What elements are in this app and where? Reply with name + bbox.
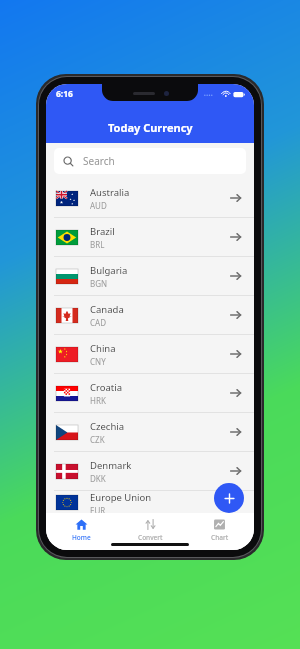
button[interactable]: Chart [185,516,254,550]
button[interactable]: Add currency [214,483,244,513]
staticText: Today Currency [108,120,193,135]
staticText: Brazil [90,225,115,238]
button[interactable]: Search [54,148,246,174]
staticText: EUR [90,505,106,513]
staticText: China [90,342,116,355]
staticText: CZK [90,434,105,445]
button[interactable]: Europe Union [46,491,254,513]
staticText: BRL [90,239,105,250]
staticText: HRK [90,395,106,406]
button[interactable]: Brazil [46,218,254,256]
staticText: Croatia [90,381,123,394]
staticText: Denmark [90,459,132,472]
staticText: CAD [90,317,107,328]
button[interactable]: Canada [46,296,254,334]
staticText: Chart [211,533,229,542]
button[interactable]: Convert [116,516,185,550]
button[interactable]: Home [46,516,116,550]
button[interactable]: Czechia [46,413,254,451]
button[interactable]: Australia [46,179,254,217]
button[interactable]: China [46,335,254,373]
staticText: Home [72,533,91,542]
button[interactable]: Croatia [46,374,254,412]
staticText: Australia [90,186,130,199]
staticText: Search [83,154,115,168]
staticText: Bulgaria [90,264,128,277]
staticText: Czechia [90,420,125,433]
staticText: Europe Union [90,491,152,504]
button[interactable]: Bulgaria [46,257,254,295]
staticText: AUD [90,200,107,211]
staticText: Convert [138,533,163,542]
staticText: BGN [90,278,108,289]
staticText: 6:16 [56,88,73,100]
staticText: Canada [90,303,124,316]
button[interactable]: Denmark [46,452,254,490]
staticText: CNY [90,356,106,367]
staticText: DKK [90,473,106,484]
